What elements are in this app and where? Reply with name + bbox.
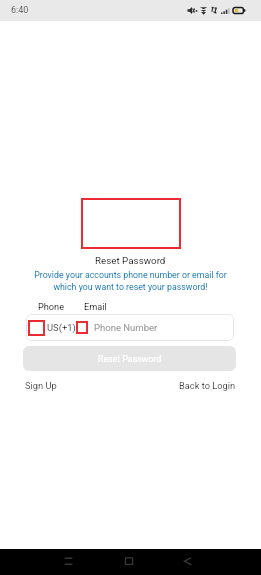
button[interactable]: Home <box>87 549 174 575</box>
staticText: US(+1) <box>47 322 76 333</box>
staticText: Reset Password <box>95 255 166 266</box>
button[interactable]: Phone <box>35 299 68 314</box>
button[interactable]: Back to Login <box>179 380 236 391</box>
button[interactable]: US(+1) <box>26 314 234 341</box>
staticText: Email <box>84 301 107 312</box>
staticText: Phone Number <box>94 322 158 333</box>
staticText: Provide your accounts phone number or em… <box>30 270 231 292</box>
button[interactable]: Sign Up <box>25 380 57 391</box>
staticText: 6:40 <box>11 5 29 16</box>
staticText: Reset Password <box>98 354 162 364</box>
button[interactable]: Recent apps <box>0 549 87 575</box>
staticText: Sign Up <box>25 380 57 391</box>
staticText: Back to Login <box>179 380 236 391</box>
button[interactable]: Email <box>81 299 110 314</box>
staticText: Phone <box>38 301 65 312</box>
button[interactable]: Reset Password <box>23 346 236 371</box>
button[interactable]: Back <box>174 549 261 575</box>
